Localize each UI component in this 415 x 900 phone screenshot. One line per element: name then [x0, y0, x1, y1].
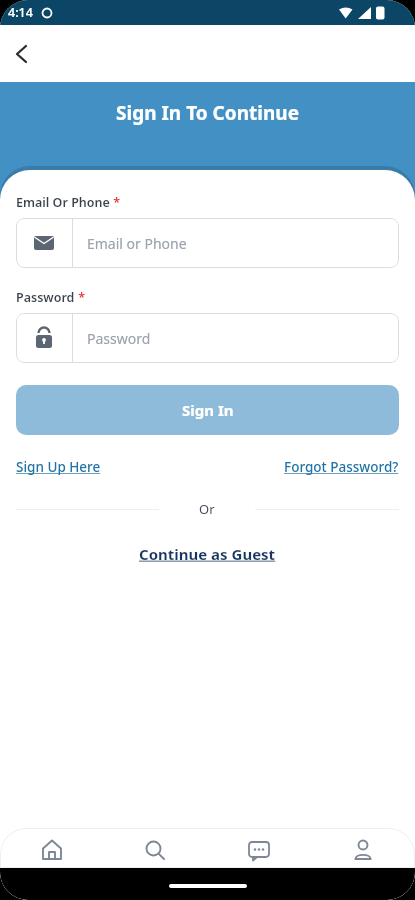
staticText: Sign In To Continue: [0, 100, 415, 126]
staticText: 4:14: [8, 4, 33, 21]
button[interactable]: Forgot Password?: [284, 458, 399, 476]
staticText: *: [75, 289, 86, 306]
staticText: Sign In: [182, 400, 234, 420]
button[interactable]: Password: [16, 313, 399, 363]
button[interactable]: [8, 40, 36, 68]
staticText: Email or Phone: [87, 234, 187, 253]
button[interactable]: [103, 830, 207, 868]
button[interactable]: Continue as Guest: [139, 544, 276, 564]
button[interactable]: [311, 830, 415, 868]
button[interactable]: Sign Up Here: [16, 458, 101, 476]
staticText: Email Or Phone: [16, 194, 110, 211]
staticText: Password: [16, 289, 75, 306]
button[interactable]: Email or Phone: [16, 218, 399, 268]
button[interactable]: [0, 830, 103, 868]
button[interactable]: [207, 830, 311, 868]
staticText: Password: [87, 329, 151, 348]
staticText: *: [110, 194, 121, 211]
staticText: Or: [199, 500, 215, 518]
button[interactable]: Sign In: [16, 385, 399, 435]
